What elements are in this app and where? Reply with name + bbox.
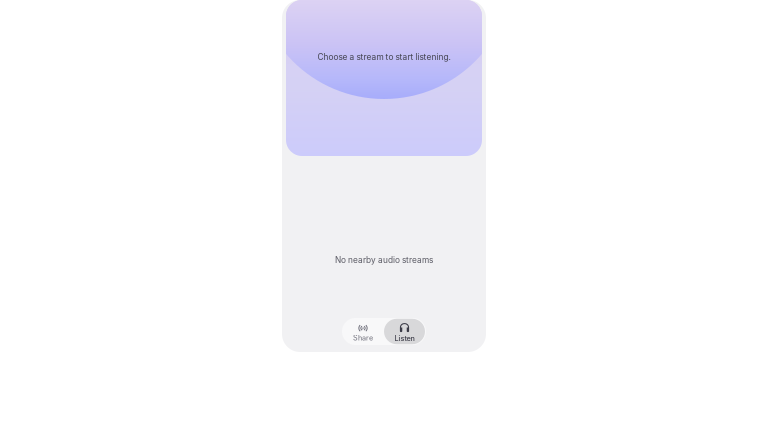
button[interactable]: Listen — [384, 319, 425, 344]
button[interactable]: Share — [343, 318, 383, 345]
staticText: No nearby audio streams — [335, 255, 433, 265]
staticText: Share — [353, 334, 373, 342]
staticText: Listen — [394, 334, 414, 343]
staticText: Choose a stream to start listening. — [317, 52, 450, 62]
